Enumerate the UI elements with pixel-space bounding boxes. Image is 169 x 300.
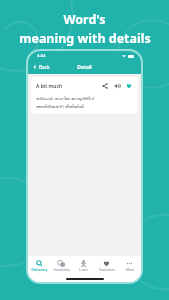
- staticText: 4:34: [37, 53, 46, 59]
- staticText: Favourites: [99, 268, 115, 272]
- staticText: Word's: [63, 11, 106, 28]
- button[interactable]: Dictionary: [28, 258, 50, 274]
- button[interactable]: Learn: [72, 258, 95, 274]
- staticText: Translation: [53, 268, 70, 272]
- button[interactable]: Back: [28, 62, 55, 72]
- button[interactable]: Share: [101, 82, 109, 90]
- staticText: ഒരുപാട്, ചെറിയ കാര്യത്തിന്: [36, 95, 133, 101]
- button[interactable]: Speak: [113, 82, 121, 90]
- staticText: Back: [39, 64, 50, 70]
- button[interactable]: Favorite: [125, 82, 133, 90]
- staticText: Learn: [79, 268, 88, 272]
- button[interactable]: More: [118, 258, 141, 274]
- staticText: meaning with details: [19, 30, 151, 47]
- button[interactable]: Favourites: [95, 258, 118, 274]
- staticText: Detail: [77, 64, 92, 71]
- staticText: Dictionary: [31, 268, 48, 272]
- button[interactable]: Translation: [50, 258, 72, 274]
- staticText: A bit much: [36, 83, 101, 90]
- staticText: More: [126, 268, 134, 272]
- button[interactable]: A bit much: [31, 77, 138, 114]
- staticText: അതിരുകടന്ന രീതിയിൽ: [36, 103, 133, 109]
